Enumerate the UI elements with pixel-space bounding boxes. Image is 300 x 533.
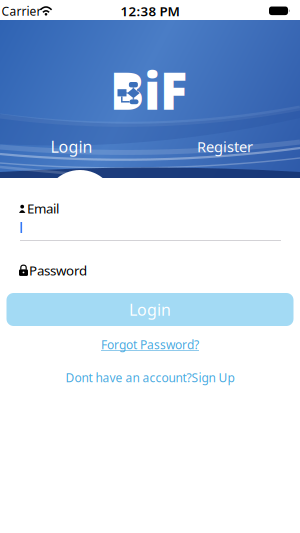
staticText: Register	[197, 137, 253, 156]
staticText: Carrier	[1, 3, 41, 19]
staticText: Dont have an account?Sign Up	[65, 369, 234, 385]
button[interactable]: Login	[16, 132, 126, 160]
button[interactable]: Dont have an account?Sign Up	[65, 369, 234, 385]
staticText: Email	[27, 199, 59, 217]
staticText: 12:38 PM	[120, 2, 179, 20]
staticText: Forgot Password?	[101, 336, 199, 352]
button[interactable]: Register	[170, 132, 280, 160]
staticText: Password	[29, 261, 87, 279]
staticText: Login	[50, 136, 92, 157]
button[interactable]	[20, 216, 281, 241]
button[interactable]: Login	[6, 293, 293, 326]
staticText: BiF	[110, 56, 187, 124]
staticText: Login	[129, 299, 171, 320]
button[interactable]: Forgot Password?	[101, 336, 199, 352]
